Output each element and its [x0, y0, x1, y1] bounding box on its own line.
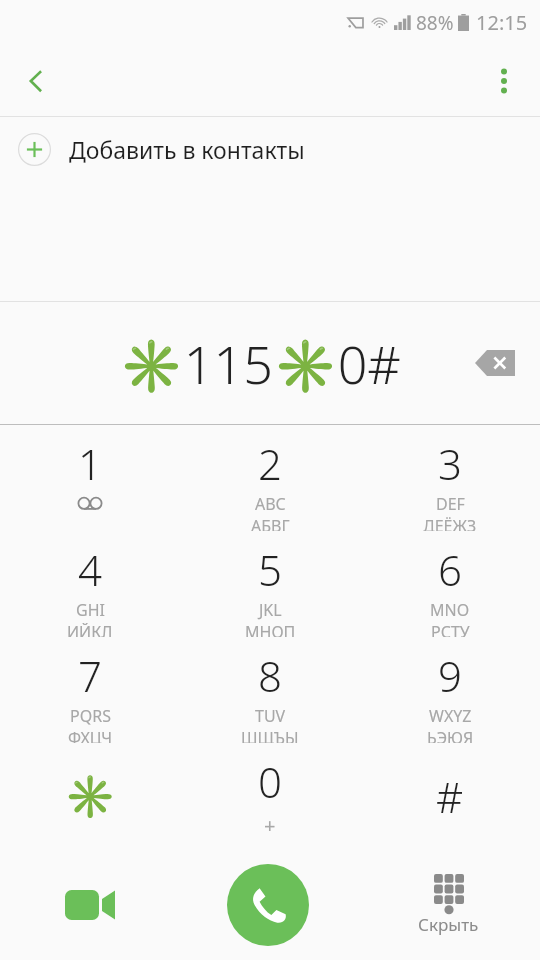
staticText: МНОП [245, 621, 296, 637]
staticText: Скрыть [418, 913, 479, 936]
staticText: 7 [78, 647, 102, 704]
staticText: JKL [259, 599, 282, 621]
staticText: # [436, 768, 464, 825]
staticText: Добавить в контакты [69, 134, 305, 165]
staticText: GHI [76, 599, 105, 621]
button[interactable]: Скрыть [403, 860, 493, 950]
button[interactable]: Video call [47, 862, 133, 948]
staticText: 12:15 [476, 9, 528, 36]
staticText: ✳115✳0# [119, 328, 401, 399]
staticText: DEF [436, 493, 465, 515]
staticText: ABC [255, 493, 286, 515]
staticText: + [264, 812, 276, 839]
staticText: 9 [438, 647, 462, 704]
button[interactable]: 0 [180, 743, 360, 849]
staticText: 4 [78, 541, 102, 598]
staticText: РСТУ [431, 621, 470, 637]
staticText: 6 [438, 541, 462, 598]
staticText: PQRS [70, 705, 111, 727]
staticText: ФХЦЧ [68, 727, 113, 743]
staticText: ✳ [64, 772, 117, 821]
button[interactable]: Backspace [464, 332, 526, 394]
button[interactable]: Call [227, 864, 309, 946]
staticText: WXYZ [429, 705, 472, 727]
staticText: 8 [258, 647, 282, 704]
staticText: 1 [78, 435, 102, 492]
staticText: ИЙКЛ [67, 621, 113, 637]
staticText: ДЕЁЖЗ [423, 515, 477, 531]
button[interactable]: 6 [360, 531, 540, 637]
button[interactable]: 7 [0, 637, 180, 743]
button[interactable]: # [360, 743, 540, 849]
staticText: MNO [430, 599, 470, 621]
button[interactable]: 3 [360, 425, 540, 531]
staticText: 2 [258, 435, 282, 492]
button[interactable]: 4 [0, 531, 180, 637]
staticText: 5 [258, 541, 282, 598]
staticText: ЬЭЮЯ [427, 727, 474, 743]
button[interactable]: 9 [360, 637, 540, 743]
button[interactable]: 2 [180, 425, 360, 531]
staticText: АБВГ [251, 515, 290, 531]
staticText: 88% [416, 10, 454, 36]
button[interactable]: 8 [180, 637, 360, 743]
button[interactable]: Добавить в контакты [0, 117, 540, 181]
button[interactable]: More options [478, 55, 530, 107]
button[interactable]: 5 [180, 531, 360, 637]
button[interactable]: ✳ [0, 743, 180, 849]
staticText: 3 [438, 435, 462, 492]
staticText: ШЩЪЫ [241, 727, 299, 743]
button[interactable]: Back [10, 55, 62, 107]
staticText: TUV [255, 705, 286, 727]
button[interactable]: 1 [0, 425, 180, 531]
staticText: 0 [258, 753, 282, 810]
